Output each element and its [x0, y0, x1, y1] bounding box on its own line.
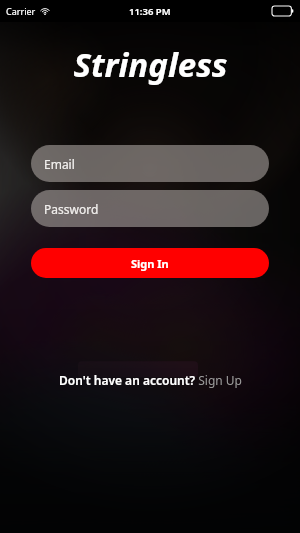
staticText: Carrier	[6, 5, 36, 17]
button[interactable]: Email	[31, 145, 269, 182]
staticText: Sign In	[131, 256, 169, 271]
staticText: Password	[44, 201, 99, 217]
staticText: Don't have an account? Sign Up	[59, 372, 242, 388]
button[interactable]: Don't have an account? Sign Up	[24, 372, 276, 388]
staticText: 11:36 PM	[129, 5, 171, 18]
staticText: Email	[44, 156, 75, 172]
other: Battery	[272, 6, 294, 16]
staticText: Stringless	[73, 42, 228, 87]
button[interactable]: Sign In	[31, 248, 269, 278]
other: Wi-Fi signal	[40, 6, 50, 16]
button[interactable]: Password	[31, 190, 269, 227]
